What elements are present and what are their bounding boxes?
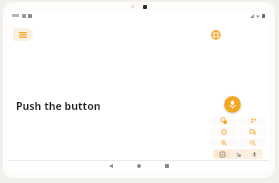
button[interactable]: Recent apps bbox=[156, 161, 178, 171]
button[interactable]: Zoom out bbox=[239, 138, 266, 147]
button[interactable]: Copy bbox=[210, 116, 237, 125]
button[interactable]: Language bbox=[210, 29, 221, 40]
button[interactable]: Back bbox=[100, 161, 122, 171]
staticText: Push the button bbox=[16, 99, 101, 113]
button[interactable]: Add person bbox=[239, 116, 266, 125]
button[interactable]: Open menu bbox=[13, 28, 33, 41]
button[interactable]: Refresh bbox=[210, 127, 237, 136]
button[interactable]: Keyboard bbox=[214, 150, 230, 158]
button[interactable]: Translate bbox=[230, 150, 246, 158]
button[interactable]: Microphone bbox=[246, 150, 262, 158]
button[interactable]: Download bbox=[239, 127, 266, 136]
button[interactable]: Record voice bbox=[224, 96, 241, 113]
button[interactable]: Zoom in bbox=[210, 138, 237, 147]
button[interactable]: Home bbox=[128, 161, 150, 171]
